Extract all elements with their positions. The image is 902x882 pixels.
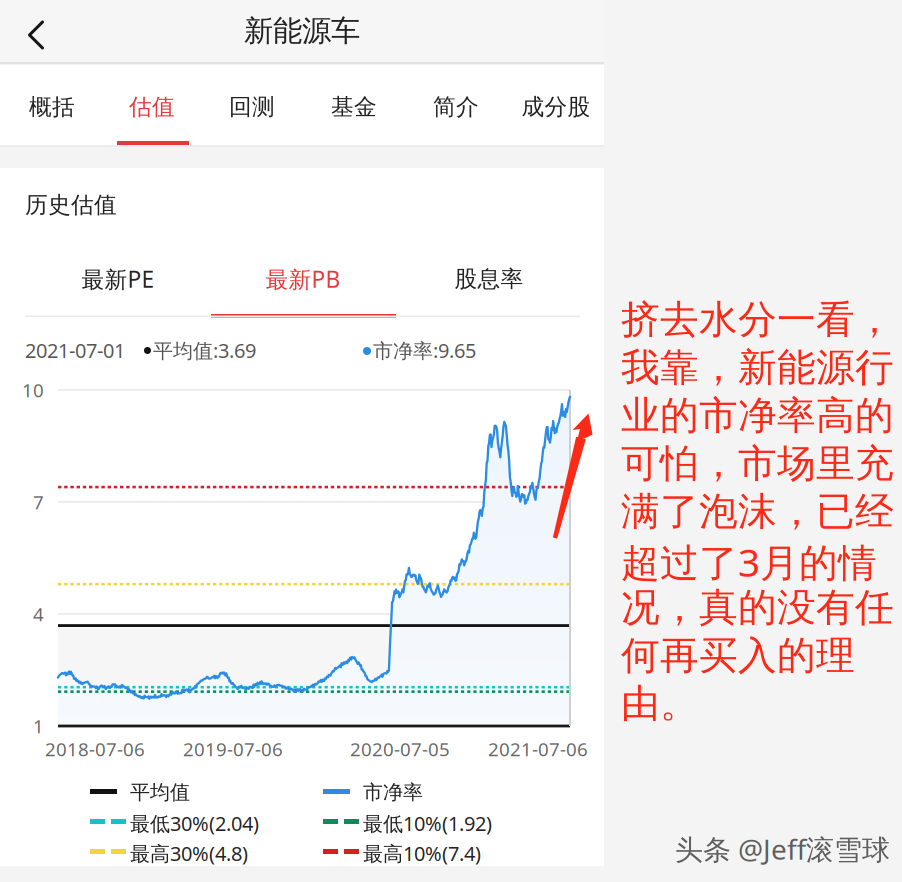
button[interactable]: 股息率 [409, 250, 569, 308]
staticText: 市净率 [363, 780, 423, 805]
staticText: 况，真的没有任 [621, 584, 894, 631]
staticText: 历史估值 [25, 191, 117, 219]
staticText: 2021-07-01 [25, 337, 125, 364]
staticText: 由。 [621, 680, 699, 727]
staticText: 可怕，市场里充 [621, 440, 894, 487]
staticText: 成分股 [521, 93, 590, 121]
button[interactable]: 估值 [102, 67, 202, 147]
staticText: 最高10%(7.4) [363, 840, 481, 867]
staticText: 最新PB [265, 264, 340, 294]
staticText: 我靠，新能源行 [621, 344, 894, 391]
staticText: 股息率 [454, 265, 523, 293]
staticText: 满了泡沫，已经 [621, 488, 894, 535]
staticText: 平均值 [130, 780, 190, 805]
staticText: 最低10%(1.92) [363, 810, 492, 837]
button[interactable]: Back [26, 19, 45, 51]
staticText: 2021-07-06 [488, 737, 588, 761]
staticText: 最低30%(2.04) [130, 810, 259, 837]
button[interactable]: 最新PB [223, 250, 383, 308]
staticText: 最新PE [81, 264, 154, 294]
button[interactable]: 最新PE [38, 250, 198, 308]
staticText: 超过了3月的情 [621, 536, 877, 587]
staticText: 业的市净率高的 [621, 392, 894, 439]
staticText: 4 [33, 602, 44, 626]
staticText: 回测 [229, 93, 275, 121]
staticText: 挤去水分一看， [621, 296, 894, 343]
staticText: 概括 [29, 93, 75, 121]
staticText: 简介 [433, 93, 479, 121]
staticText: 平均值:3.69 [153, 337, 256, 364]
button[interactable]: 回测 [202, 67, 302, 147]
staticText: 最高30%(4.8) [130, 840, 248, 867]
staticText: 2019-07-06 [183, 737, 283, 761]
staticText: 何再买入的理 [621, 632, 855, 679]
button[interactable]: 基金 [304, 67, 404, 147]
staticText: 1 [33, 714, 44, 738]
staticText: 市净率:9.65 [373, 337, 476, 364]
staticText: 估值 [129, 93, 175, 121]
staticText: 10 [22, 378, 44, 402]
staticText: 基金 [331, 93, 377, 121]
staticText: 头条 @Jeff滚雪球 [675, 830, 890, 868]
staticText: 2018-07-06 [45, 737, 145, 761]
staticText: 7 [33, 490, 44, 514]
button[interactable]: 概括 [2, 67, 102, 147]
button[interactable]: 简介 [406, 67, 506, 147]
button[interactable]: 成分股 [506, 67, 606, 147]
staticText: 2020-07-05 [350, 737, 450, 761]
staticText: 新能源车 [244, 13, 360, 49]
